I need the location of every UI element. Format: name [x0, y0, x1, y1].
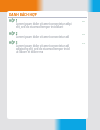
staticText: ut labore et dolore ma [16, 50, 44, 54]
staticText: HỘP 3 [9, 41, 18, 45]
button[interactable]: HỘP 3 [8, 41, 87, 45]
staticText: Lorem ipsum dolor sit amet consectetur a… [16, 35, 70, 39]
staticText: adipiscing elit, sed do eiusmod tempor i… [16, 47, 70, 51]
staticText: Lorem ipsum dolor sit amet consectetur a… [16, 22, 72, 26]
staticText: HỘP 2 [9, 32, 18, 36]
staticText: elit, sed do eiusmod tempor incididunt [16, 25, 64, 29]
staticText: 12 [82, 19, 85, 22]
button[interactable]: HỘP 1 [8, 19, 87, 23]
staticText: 14 [82, 41, 85, 44]
staticText: HỘP 1 [9, 19, 18, 23]
staticText: Lorem ipsum dolor sit amet consectetur a… [16, 44, 70, 48]
staticText: 13 [82, 32, 85, 35]
button[interactable]: HỘP 2 [8, 32, 87, 36]
staticText: DANH BÁCH HỢP [9, 12, 37, 16]
